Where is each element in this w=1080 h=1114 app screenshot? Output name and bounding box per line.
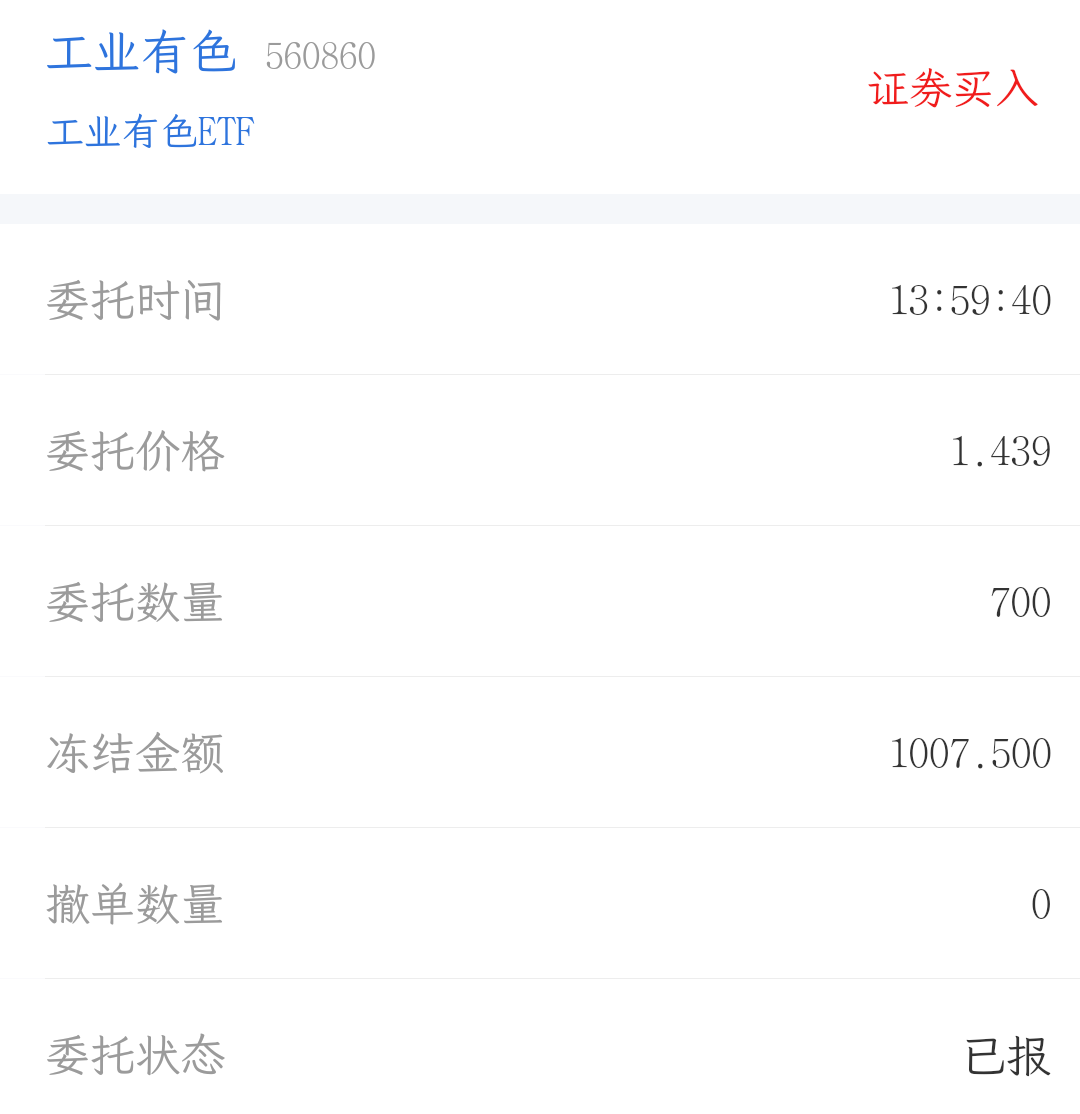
staticText: 560860 <box>265 27 376 79</box>
staticText: 700 <box>990 571 1052 629</box>
staticText: 1.439 <box>949 420 1052 478</box>
button[interactable]: 证券买入 <box>866 59 1038 116</box>
staticText: 委托数量 <box>45 572 226 631</box>
button[interactable]: 委托价格 <box>0 375 1080 526</box>
button[interactable]: 委托状态 <box>0 979 1080 1114</box>
button[interactable]: 撤单数量 <box>0 828 1080 979</box>
staticText: 委托状态 <box>45 1025 226 1084</box>
staticText: 委托价格 <box>45 421 226 480</box>
button[interactable]: 工业有色 <box>45 19 376 82</box>
staticText: 撤单数量 <box>45 874 226 933</box>
staticText: 13:59:40 <box>888 269 1052 327</box>
staticText: 已报 <box>960 1025 1052 1086</box>
staticText: 0 <box>1031 873 1052 931</box>
staticText: 委托时间 <box>45 270 226 329</box>
staticText: 1007.500 <box>888 722 1052 780</box>
button[interactable]: 委托时间 <box>0 224 1080 375</box>
button[interactable]: 冻结金额 <box>0 677 1080 828</box>
staticText: 工业有色 <box>45 19 238 82</box>
staticText: 工业有色ETF <box>46 102 256 156</box>
staticText: 冻结金额 <box>45 723 226 782</box>
button[interactable]: 委托数量 <box>0 526 1080 677</box>
